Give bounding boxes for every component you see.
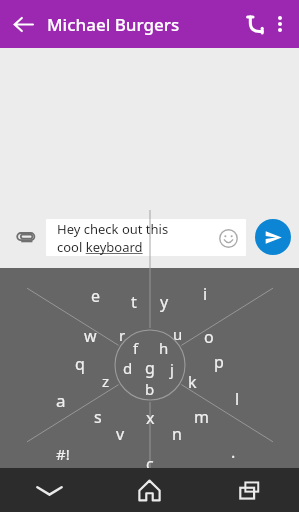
button[interactable]: a (48, 388, 74, 412)
button[interactable]: z (93, 369, 119, 393)
button[interactable]: j (159, 357, 185, 381)
staticText: o (204, 326, 214, 348)
button[interactable]: f (123, 336, 149, 360)
button[interactable]: Back (0, 1, 46, 47)
button[interactable]: l (224, 387, 250, 411)
button[interactable]: q (67, 352, 93, 376)
button[interactable]: Send (251, 215, 295, 259)
button[interactable]: y (151, 290, 177, 314)
staticText: g (145, 357, 155, 379)
button[interactable]: b (137, 377, 163, 401)
button[interactable]: r (109, 323, 135, 347)
button[interactable]: . (220, 440, 246, 464)
staticText: r (119, 325, 126, 345)
staticText: p (214, 351, 224, 373)
staticText: y (160, 291, 169, 313)
button[interactable]: Hide keyboard (0, 468, 99, 512)
staticText: . (231, 441, 236, 463)
staticText: l (235, 388, 240, 410)
staticText: Michael Burgers (47, 13, 180, 36)
button[interactable]: Attach file (6, 217, 46, 257)
staticText: j (170, 359, 174, 379)
button[interactable]: Hey check out this (46, 219, 246, 256)
staticText: x (146, 407, 155, 429)
button[interactable]: #! (50, 442, 76, 466)
button[interactable]: w (77, 324, 103, 348)
button[interactable]: More options (261, 5, 299, 43)
button[interactable]: n (164, 422, 190, 446)
button[interactable]: i (192, 282, 218, 306)
staticText: cool keyboard (57, 238, 143, 256)
staticText: a (56, 389, 66, 412)
button[interactable]: Emoji (215, 225, 241, 251)
button[interactable]: s (85, 405, 111, 429)
button[interactable]: x (137, 406, 163, 430)
staticText: m (194, 406, 209, 428)
button[interactable]: Home (99, 468, 199, 512)
staticText: v (116, 423, 125, 445)
button[interactable]: p (206, 350, 232, 374)
button[interactable]: m (188, 405, 214, 429)
staticText: e (91, 285, 101, 307)
button[interactable]: c (137, 452, 163, 476)
staticText: t (131, 291, 137, 313)
button[interactable]: v (107, 422, 133, 446)
button[interactable]: e (83, 284, 109, 308)
staticText: i (203, 283, 208, 305)
staticText: h (159, 338, 169, 358)
button[interactable]: Recent apps (199, 468, 299, 512)
staticText: u (173, 324, 183, 344)
staticText: s (94, 406, 102, 428)
button[interactable]: u (165, 322, 191, 346)
button[interactable]: o (196, 325, 222, 349)
staticText: #! (56, 444, 70, 464)
staticText: k (188, 371, 197, 393)
staticText: q (75, 353, 85, 375)
button[interactable]: d (115, 356, 141, 380)
button[interactable]: g (137, 356, 163, 380)
staticText: b (145, 379, 155, 399)
staticText: d (123, 358, 133, 378)
button[interactable]: Call (235, 4, 275, 44)
button[interactable]: t (121, 290, 147, 314)
staticText: w (84, 325, 97, 347)
button[interactable]: k (179, 370, 205, 394)
staticText: z (102, 371, 110, 391)
button[interactable]: h (151, 336, 177, 360)
staticText: n (172, 423, 182, 445)
staticText: c (146, 453, 154, 475)
staticText: Hey check out this (57, 220, 169, 238)
staticText: f (133, 338, 139, 358)
